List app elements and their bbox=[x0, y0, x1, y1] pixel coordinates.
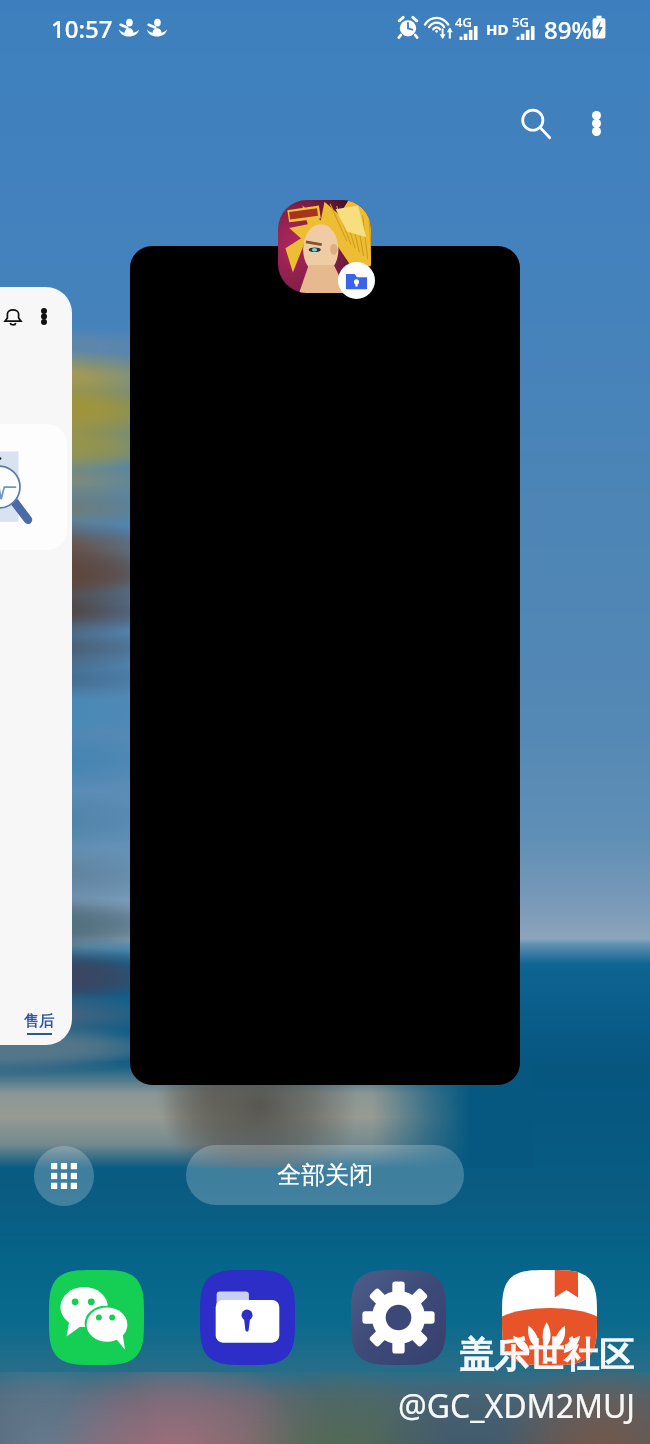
button[interactable]: Community bbox=[502, 1270, 597, 1365]
staticText: 10:57 bbox=[51, 12, 113, 45]
staticText: 4G bbox=[455, 13, 472, 31]
button[interactable]: Search bbox=[505, 93, 567, 155]
staticText: 盖乐世社区 bbox=[459, 1333, 634, 1377]
staticText: @GC_XDM2MUJ bbox=[398, 1384, 636, 1428]
staticText: 89% bbox=[544, 13, 592, 46]
staticText: HD bbox=[486, 19, 509, 39]
button[interactable]: 售后 bbox=[0, 287, 72, 1045]
button[interactable]: Secure Folder bbox=[200, 1270, 295, 1365]
staticText: 全部关闭 bbox=[277, 1160, 373, 1190]
staticText: 售后 bbox=[24, 1012, 54, 1031]
button[interactable]: More options bbox=[566, 93, 626, 153]
button[interactable] bbox=[130, 246, 520, 1085]
button[interactable]: 全部关闭 bbox=[186, 1145, 464, 1205]
staticText: 5G bbox=[512, 13, 529, 31]
button[interactable]: WeChat bbox=[49, 1270, 144, 1365]
button[interactable]: App list bbox=[34, 1146, 94, 1206]
button[interactable]: Settings bbox=[351, 1270, 446, 1365]
